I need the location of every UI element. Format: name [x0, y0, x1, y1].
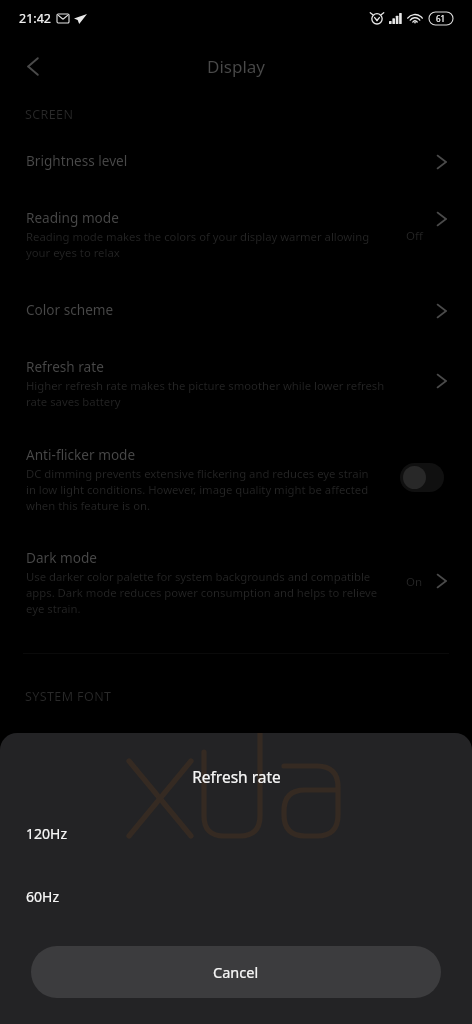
staticText: Color scheme — [26, 300, 114, 319]
staticText: Refresh rate — [192, 766, 281, 787]
staticText: Higher refresh rate makes the picture sm… — [26, 378, 385, 393]
staticText: DC dimming prevents extensive flickering… — [26, 466, 369, 481]
staticText: SCREEN — [25, 106, 74, 123]
staticText: your eyes to relax — [26, 245, 120, 260]
staticText: Dark mode — [26, 548, 97, 567]
button[interactable]: Cancel — [31, 946, 441, 998]
button[interactable]: Back — [13, 46, 53, 86]
staticText: SYSTEM FONT — [25, 688, 112, 705]
staticText: Anti-flicker mode — [26, 445, 136, 464]
staticText: rate saves battery — [26, 394, 121, 409]
staticText: 61 — [436, 13, 446, 24]
button[interactable]: 60Hz — [0, 870, 472, 922]
staticText: 120Hz — [26, 824, 67, 843]
staticText: Use darker color palette for system back… — [26, 569, 371, 584]
button[interactable]: Anti-flicker mode toggle — [400, 463, 444, 492]
staticText: Off — [406, 228, 423, 244]
staticText: On — [406, 574, 423, 590]
staticText: 21:42 — [19, 10, 51, 27]
staticText: Refresh rate — [26, 357, 104, 376]
staticText: Reading mode — [26, 208, 119, 227]
staticText: apps. Dark mode reduces power consumptio… — [26, 585, 378, 600]
button[interactable]: 120Hz — [0, 807, 472, 859]
staticText: when this feature is on. — [26, 498, 150, 513]
staticText: 60Hz — [26, 887, 59, 906]
staticText: Brightness level — [26, 151, 128, 170]
staticText: Cancel — [213, 962, 259, 982]
staticText: Reading mode makes the colors of your di… — [26, 229, 370, 244]
staticText: eye strain. — [26, 601, 81, 616]
staticText: Display — [207, 55, 265, 78]
staticText: in low light conditions. However, image … — [26, 482, 369, 497]
